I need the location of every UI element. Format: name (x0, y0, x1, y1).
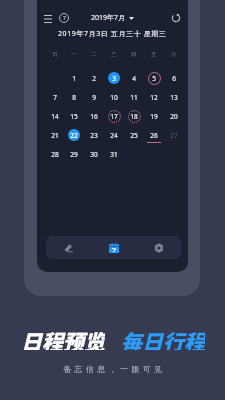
staticText: 日程预览 (21, 326, 105, 350)
button[interactable]: Edit (46, 236, 91, 259)
staticText: 21 (51, 131, 59, 140)
staticText: 五 (151, 51, 157, 58)
staticText: 三 (111, 51, 117, 58)
button[interactable]: 3 (105, 69, 123, 87)
staticText: 30 (90, 150, 98, 159)
staticText: 24 (110, 131, 118, 140)
staticText: 4 (132, 74, 136, 83)
staticText: 7 (53, 93, 57, 102)
staticText: 一 (71, 51, 77, 58)
staticText: 20 (170, 112, 178, 121)
staticText: 2 (92, 74, 96, 83)
button[interactable]: 1 (65, 69, 83, 87)
staticText: 23 (90, 131, 98, 140)
staticText: 19 (150, 112, 158, 121)
button[interactable]: 27 (165, 126, 183, 144)
button[interactable]: 7 (46, 88, 64, 106)
button[interactable]: Calendar (91, 236, 136, 259)
staticText: 日 (52, 51, 58, 58)
button[interactable]: 2019年7月 (91, 11, 134, 25)
staticText: 六 (171, 51, 177, 58)
button[interactable]: 13 (165, 88, 183, 106)
staticText: 7 (63, 15, 66, 22)
staticText: 9 (92, 93, 96, 102)
staticText: 26 (150, 131, 158, 140)
button[interactable]: 29 (65, 145, 83, 163)
staticText: 5 (152, 74, 156, 83)
staticText: 13 (170, 93, 178, 102)
staticText: 25 (130, 131, 138, 140)
staticText: 四 (131, 51, 137, 58)
button[interactable]: 2 (85, 69, 103, 87)
button[interactable]: 26 (145, 126, 163, 144)
button[interactable]: 19 (145, 107, 163, 125)
staticText: 10 (110, 93, 118, 102)
button[interactable]: 20 (165, 107, 183, 125)
staticText: 18 (130, 112, 138, 121)
staticText: 14 (51, 112, 59, 121)
button[interactable]: 16 (85, 107, 103, 125)
staticText: 17 (110, 112, 118, 121)
staticText: 11 (130, 93, 138, 102)
button[interactable]: Refresh (168, 10, 184, 26)
staticText: 6 (172, 74, 176, 83)
button[interactable]: Today (57, 11, 71, 25)
staticText: 3 (112, 74, 116, 83)
button[interactable]: 23 (85, 126, 103, 144)
button[interactable]: 14 (46, 107, 64, 125)
staticText: 15 (70, 112, 78, 121)
button[interactable]: 4 (125, 69, 143, 87)
staticText: 29 (70, 150, 78, 159)
staticText: 22 (70, 131, 78, 140)
button[interactable]: 11 (125, 88, 143, 106)
button[interactable]: Settings (136, 236, 181, 259)
button[interactable]: 6 (165, 69, 183, 87)
button[interactable]: 8 (65, 88, 83, 106)
staticText: 27 (170, 131, 178, 140)
staticText: 1 (72, 74, 76, 83)
staticText: 12 (150, 93, 158, 102)
button[interactable]: 12 (145, 88, 163, 106)
staticText: 16 (90, 112, 98, 121)
staticText: 2019年7月 (91, 13, 126, 23)
button[interactable]: 30 (85, 145, 103, 163)
button[interactable]: 25 (125, 126, 143, 144)
button[interactable]: 21 (46, 126, 64, 144)
button[interactable]: 24 (105, 126, 123, 144)
button[interactable]: 28 (46, 145, 64, 163)
staticText: 28 (51, 150, 59, 159)
staticText: 每日行程 (121, 326, 205, 350)
staticText: 31 (110, 150, 118, 159)
button[interactable]: 18 (125, 107, 143, 125)
staticText: 8 (72, 93, 76, 102)
button[interactable]: 10 (105, 88, 123, 106)
button[interactable]: 22 (65, 126, 83, 144)
button[interactable]: 17 (105, 107, 123, 125)
staticText: 二 (91, 51, 97, 58)
button[interactable]: 15 (65, 107, 83, 125)
button[interactable]: 5 (145, 69, 163, 87)
staticText: 备忘信息，一眼可见 (63, 364, 166, 374)
button[interactable]: 31 (105, 145, 123, 163)
button[interactable]: Menu (40, 10, 56, 26)
button[interactable]: 9 (85, 88, 103, 106)
staticText: 2019年7月3日 五月三十 星期三 (58, 29, 167, 39)
